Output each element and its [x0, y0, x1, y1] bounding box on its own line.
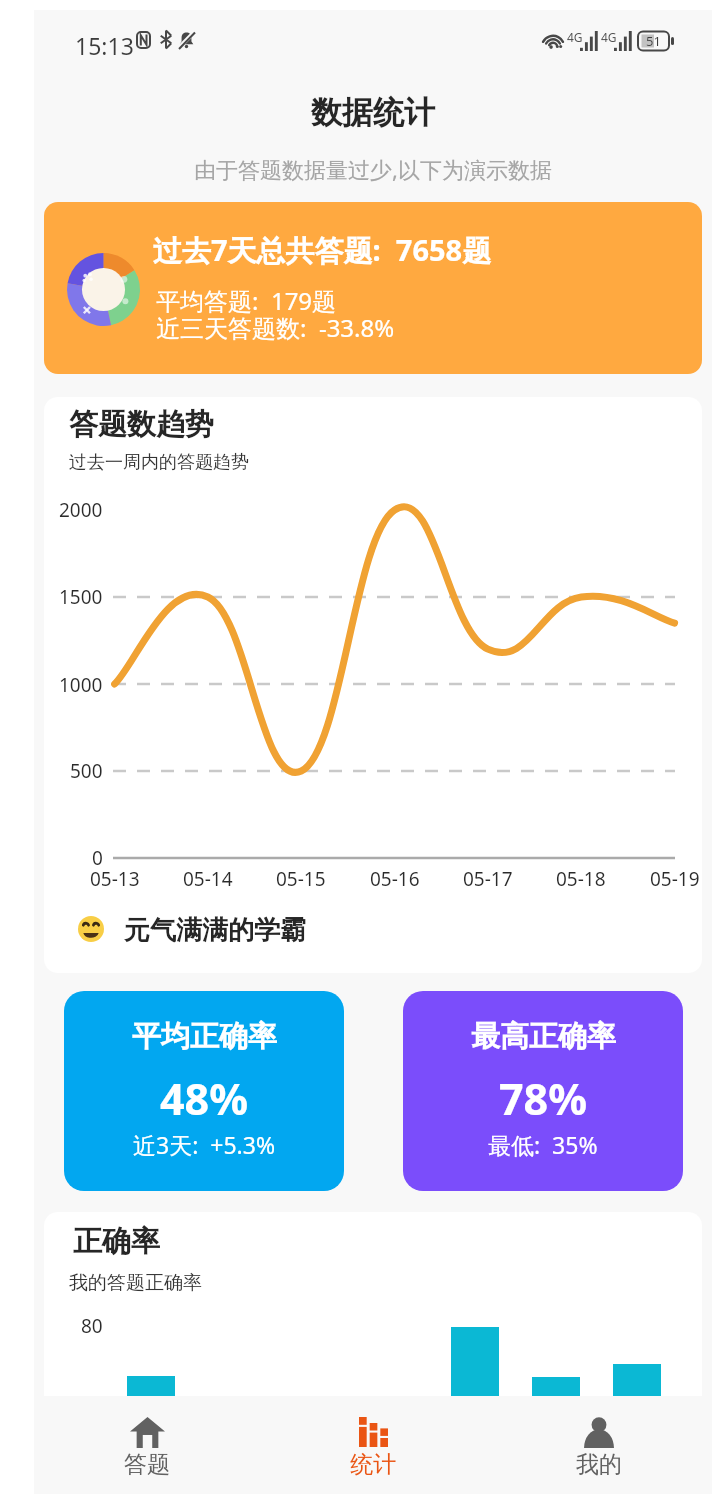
button[interactable]: Questions	[34, 1396, 260, 1494]
staticText: 最高正确率	[471, 1018, 616, 1055]
staticText: 正确率	[73, 1223, 160, 1260]
staticText: 51	[646, 32, 661, 50]
staticText: 1500	[59, 584, 103, 610]
button[interactable]: Statistics	[260, 1396, 486, 1494]
staticText: 由于答题数据量过少,以下为演示数据	[194, 154, 552, 184]
staticText: 我的	[576, 1450, 622, 1479]
staticText: 近三天答题数: -33.8%	[156, 311, 395, 344]
staticText: 4G	[567, 29, 583, 45]
staticText: 元气满满的学霸	[124, 914, 306, 947]
staticText: 平均答题: 179题	[156, 284, 337, 317]
staticText: 过去7天总共答题: 7658题	[153, 230, 492, 270]
staticText: 80	[81, 1313, 103, 1339]
staticText: 平均正确率	[132, 1018, 277, 1055]
staticText: 答题	[124, 1450, 170, 1479]
staticText: 05-19	[650, 866, 700, 892]
staticText: 统计	[350, 1450, 396, 1479]
staticText: 近3天: +5.3%	[133, 1129, 276, 1160]
staticText: 15:13	[75, 30, 134, 61]
staticText: 数据统计	[311, 93, 435, 132]
staticText: 2000	[59, 497, 103, 523]
button[interactable]: Profile	[486, 1396, 712, 1494]
staticText: 05-17	[463, 866, 513, 892]
staticText: 1000	[59, 672, 103, 698]
staticText: 答题数趋势	[69, 406, 214, 443]
button[interactable]: 过去7天总共答题: 7658题	[44, 202, 702, 374]
button[interactable]: 平均正确率	[64, 991, 344, 1191]
staticText: 05-18	[556, 866, 606, 892]
staticText: 500	[70, 758, 103, 784]
staticText: 05-14	[183, 866, 233, 892]
staticText: 4G	[601, 29, 617, 45]
staticText: 我的答题正确率	[69, 1271, 202, 1295]
staticText: 48%	[160, 1069, 248, 1128]
button[interactable]: 最高正确率	[403, 991, 683, 1191]
staticText: 过去一周内的答题趋势	[69, 451, 249, 474]
staticText: 05-13	[90, 866, 140, 892]
staticText: 最低: 35%	[488, 1129, 598, 1160]
staticText: 0	[92, 845, 103, 871]
staticText: 05-15	[276, 866, 326, 892]
staticText: 78%	[499, 1069, 587, 1128]
staticText: 05-16	[370, 866, 420, 892]
